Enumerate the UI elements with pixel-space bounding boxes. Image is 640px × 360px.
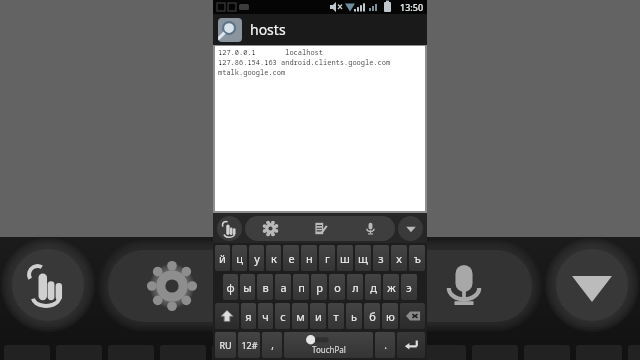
staticText: 13:50	[400, 1, 424, 13]
staticText: к	[271, 251, 277, 266]
button[interactable]: Backspace	[400, 303, 425, 329]
button[interactable]: Voice input	[345, 216, 395, 241]
staticText: щ	[358, 251, 368, 266]
staticText: й	[219, 251, 226, 266]
staticText: и	[315, 309, 322, 324]
button[interactable]: Edit note	[295, 216, 345, 241]
staticText: 127.0.0.1 localhost	[218, 48, 323, 58]
button[interactable]: а	[275, 274, 291, 300]
button[interactable]: ч	[258, 303, 273, 329]
staticText: б	[369, 309, 376, 324]
button[interactable]: я	[241, 303, 256, 329]
button[interactable]: м	[292, 303, 308, 329]
button[interactable]: л	[347, 274, 363, 300]
staticText: ы	[243, 280, 252, 295]
button[interactable]: й	[215, 245, 230, 271]
button[interactable]: д	[365, 274, 381, 300]
button[interactable]: с	[275, 303, 290, 329]
staticText: ш	[340, 251, 350, 266]
button[interactable]: hosts	[213, 14, 427, 45]
staticText: ь	[351, 309, 357, 324]
staticText: я	[245, 309, 252, 324]
button[interactable]: ю	[382, 303, 398, 329]
staticText: з	[378, 251, 384, 266]
staticText: TouchPal	[312, 344, 346, 355]
button[interactable]: щ	[355, 245, 371, 271]
staticText: р	[316, 280, 323, 295]
button[interactable]: ъ	[409, 245, 425, 271]
staticText: д	[370, 280, 377, 295]
staticText: т	[333, 309, 339, 324]
staticText: .	[384, 338, 387, 352]
button[interactable]: ф	[223, 274, 238, 300]
staticText: л	[352, 280, 359, 295]
staticText: е	[288, 251, 295, 266]
button[interactable]: ь	[346, 303, 362, 329]
staticText: а	[280, 280, 287, 295]
staticText: с	[280, 309, 286, 324]
button[interactable]: р	[311, 274, 327, 300]
staticText: п	[298, 280, 305, 295]
button[interactable]: RU	[215, 332, 236, 358]
staticText: о	[334, 280, 341, 295]
staticText: 127.86.154.163 android.clients.google.co…	[218, 58, 391, 68]
button[interactable]: и	[310, 303, 326, 329]
button[interactable]: Shift	[215, 303, 239, 329]
button[interactable]: ц	[232, 245, 247, 271]
staticText: ъ	[414, 251, 421, 266]
staticText: ч	[262, 309, 269, 324]
button[interactable]: Space	[284, 332, 373, 358]
staticText: mtalk.google.com	[218, 68, 286, 78]
staticText: х	[396, 251, 402, 266]
button[interactable]: ш	[337, 245, 353, 271]
button[interactable]: Gesture input	[217, 216, 242, 241]
button[interactable]: Hide keyboard	[398, 216, 423, 241]
staticText: hosts	[250, 20, 286, 39]
button[interactable]: 12#	[238, 332, 260, 358]
staticText: 12#	[241, 339, 258, 351]
staticText: м	[296, 309, 305, 324]
button[interactable]: .	[375, 332, 395, 358]
button[interactable]: 127.0.0.1 localhost	[215, 46, 425, 211]
staticText: г	[325, 251, 330, 266]
button[interactable]: э	[401, 274, 417, 300]
button[interactable]: х	[391, 245, 407, 271]
staticText: у	[254, 251, 260, 266]
staticText: ф	[226, 280, 235, 295]
staticText: ,	[271, 338, 274, 352]
staticText: ж	[387, 280, 396, 295]
staticText: э	[406, 280, 412, 295]
button[interactable]: Enter	[397, 332, 425, 358]
button[interactable]: г	[319, 245, 335, 271]
button[interactable]: б	[364, 303, 380, 329]
button[interactable]: п	[293, 274, 309, 300]
button[interactable]: е	[283, 245, 299, 271]
button[interactable]: ы	[240, 274, 255, 300]
staticText: ц	[236, 251, 243, 266]
button[interactable]: у	[249, 245, 264, 271]
button[interactable]: Settings	[245, 216, 295, 241]
button[interactable]: з	[373, 245, 389, 271]
staticText: в	[262, 280, 269, 295]
button[interactable]: к	[266, 245, 281, 271]
button[interactable]: ж	[383, 274, 399, 300]
button[interactable]: н	[301, 245, 317, 271]
staticText: н	[306, 251, 313, 266]
button[interactable]: т	[328, 303, 344, 329]
button[interactable]: о	[329, 274, 345, 300]
staticText: RU	[219, 339, 232, 351]
staticText: ю	[386, 309, 395, 324]
button[interactable]: в	[257, 274, 273, 300]
button[interactable]: ,	[262, 332, 282, 358]
